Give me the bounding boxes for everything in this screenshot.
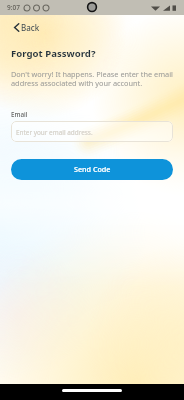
- button[interactable]: Send Code: [11, 159, 173, 180]
- button[interactable]: Back: [14, 19, 40, 36]
- other: Back: [14, 23, 19, 32]
- staticText: Email: [11, 110, 28, 119]
- button[interactable]: Enter your email address.: [11, 121, 173, 142]
- staticText: Don't worry! It happens. Please enter th…: [11, 69, 173, 89]
- staticText: Forgot Password?: [11, 47, 96, 60]
- staticText: Send Code: [74, 164, 111, 174]
- staticText: Enter your email address.: [16, 128, 93, 137]
- staticText: 9:07: [7, 3, 20, 12]
- staticText: Back: [21, 22, 40, 33]
